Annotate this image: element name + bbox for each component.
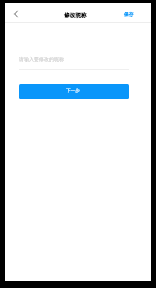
button[interactable]: 保存: [118, 8, 151, 20]
staticText: 请输入要修改的昵称: [19, 56, 64, 62]
staticText: 下一步: [66, 88, 80, 94]
button[interactable]: 下一步: [19, 84, 129, 99]
staticText: 修改昵称: [64, 12, 87, 19]
button[interactable]: Back: [8, 6, 24, 22]
staticText: 保存: [124, 11, 134, 17]
